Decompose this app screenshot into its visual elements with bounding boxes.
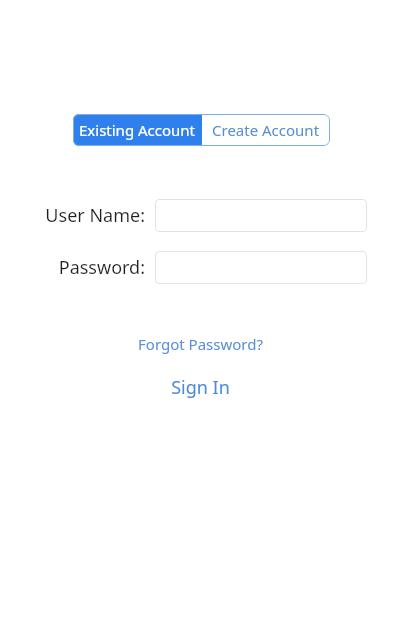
button[interactable]: Forgot Password? — [0, 333, 401, 355]
staticText: Create Account — [212, 120, 320, 140]
button[interactable]: Sign In — [0, 374, 401, 400]
button[interactable]: User Name input — [155, 199, 367, 232]
staticText: Forgot Password? — [138, 334, 263, 354]
staticText: Existing Account — [79, 120, 196, 140]
staticText: User Name: — [45, 203, 145, 228]
staticText: Sign In — [171, 375, 230, 400]
staticText: Password: — [58, 255, 145, 280]
button[interactable]: Existing Account — [73, 114, 202, 146]
button[interactable]: Create Account — [202, 114, 330, 146]
button[interactable]: Password input — [155, 251, 367, 284]
